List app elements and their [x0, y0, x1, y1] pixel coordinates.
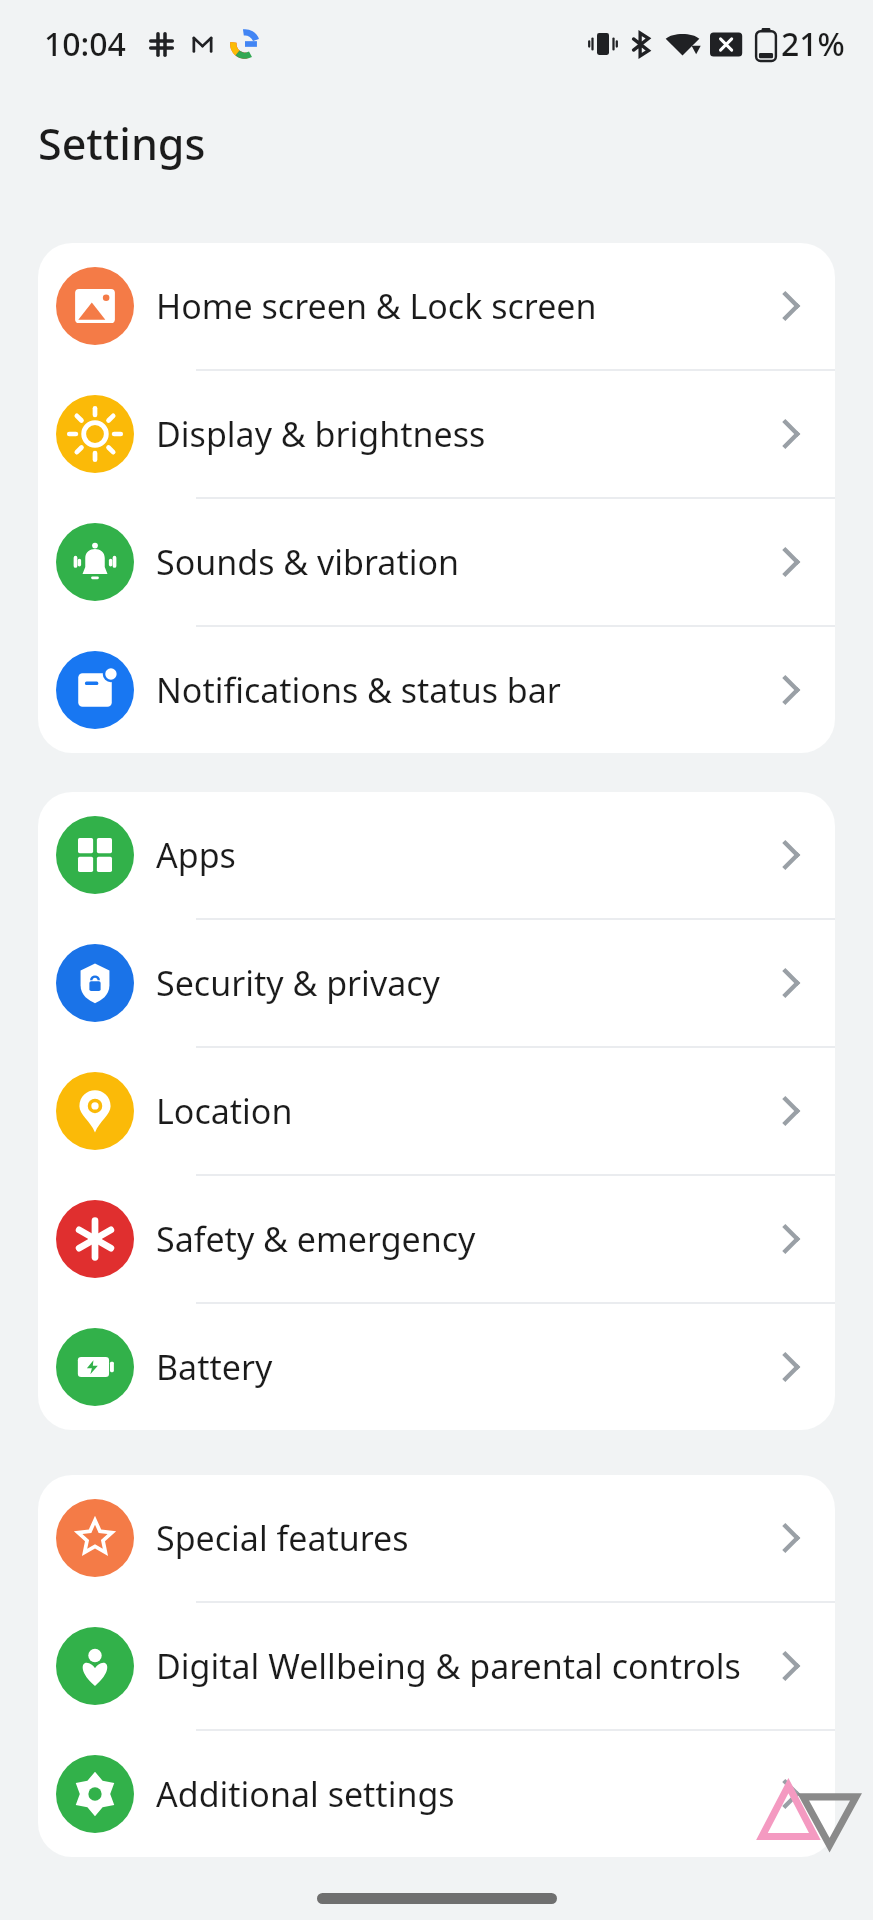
other: Open Display & brightness [769, 412, 813, 456]
other: Open Sounds & vibration [769, 540, 813, 584]
staticText: Additional settings [156, 1771, 755, 1817]
staticText: Home screen & Lock screen [156, 283, 755, 329]
staticText: Apps [156, 832, 755, 878]
other: Open Notifications & status bar [769, 668, 813, 712]
staticText: Security & privacy [156, 960, 755, 1006]
staticText: 21% [781, 22, 845, 66]
staticText: Special features [156, 1515, 755, 1561]
button[interactable]: Additional settings [38, 1731, 835, 1857]
other: Open Apps [769, 833, 813, 877]
button[interactable]: Safety & emergency [38, 1176, 835, 1302]
other: Open Digital Wellbeing & parental contro… [769, 1644, 813, 1688]
other: Open Special features [769, 1516, 813, 1560]
button[interactable]: Digital Wellbeing & parental controls [38, 1603, 835, 1729]
button[interactable]: Home screen & Lock screen [38, 243, 835, 369]
staticText: Safety & emergency [156, 1216, 755, 1262]
button[interactable]: Display & brightness [38, 371, 835, 497]
other: Open Home screen & Lock screen [769, 284, 813, 328]
other: Open Battery [769, 1345, 813, 1389]
staticText: Notifications & status bar [156, 667, 755, 713]
other: Open Security & privacy [769, 961, 813, 1005]
button[interactable]: Apps [38, 792, 835, 918]
staticText: 10:04 [44, 22, 126, 66]
button[interactable]: Special features [38, 1475, 835, 1601]
staticText: Battery [156, 1344, 755, 1390]
button[interactable]: Battery [38, 1304, 835, 1430]
button[interactable]: Sounds & vibration [38, 499, 835, 625]
staticText: Digital Wellbeing & parental controls [156, 1643, 755, 1689]
other: Open Location [769, 1089, 813, 1133]
button[interactable]: Location [38, 1048, 835, 1174]
staticText: Settings [38, 114, 206, 173]
staticText: Location [156, 1088, 755, 1134]
button[interactable]: Security & privacy [38, 920, 835, 1046]
staticText: Display & brightness [156, 411, 755, 457]
button[interactable]: Notifications & status bar [38, 627, 835, 753]
staticText: Sounds & vibration [156, 539, 755, 585]
other: Open Additional settings [769, 1772, 813, 1816]
other: Open Safety & emergency [769, 1217, 813, 1261]
